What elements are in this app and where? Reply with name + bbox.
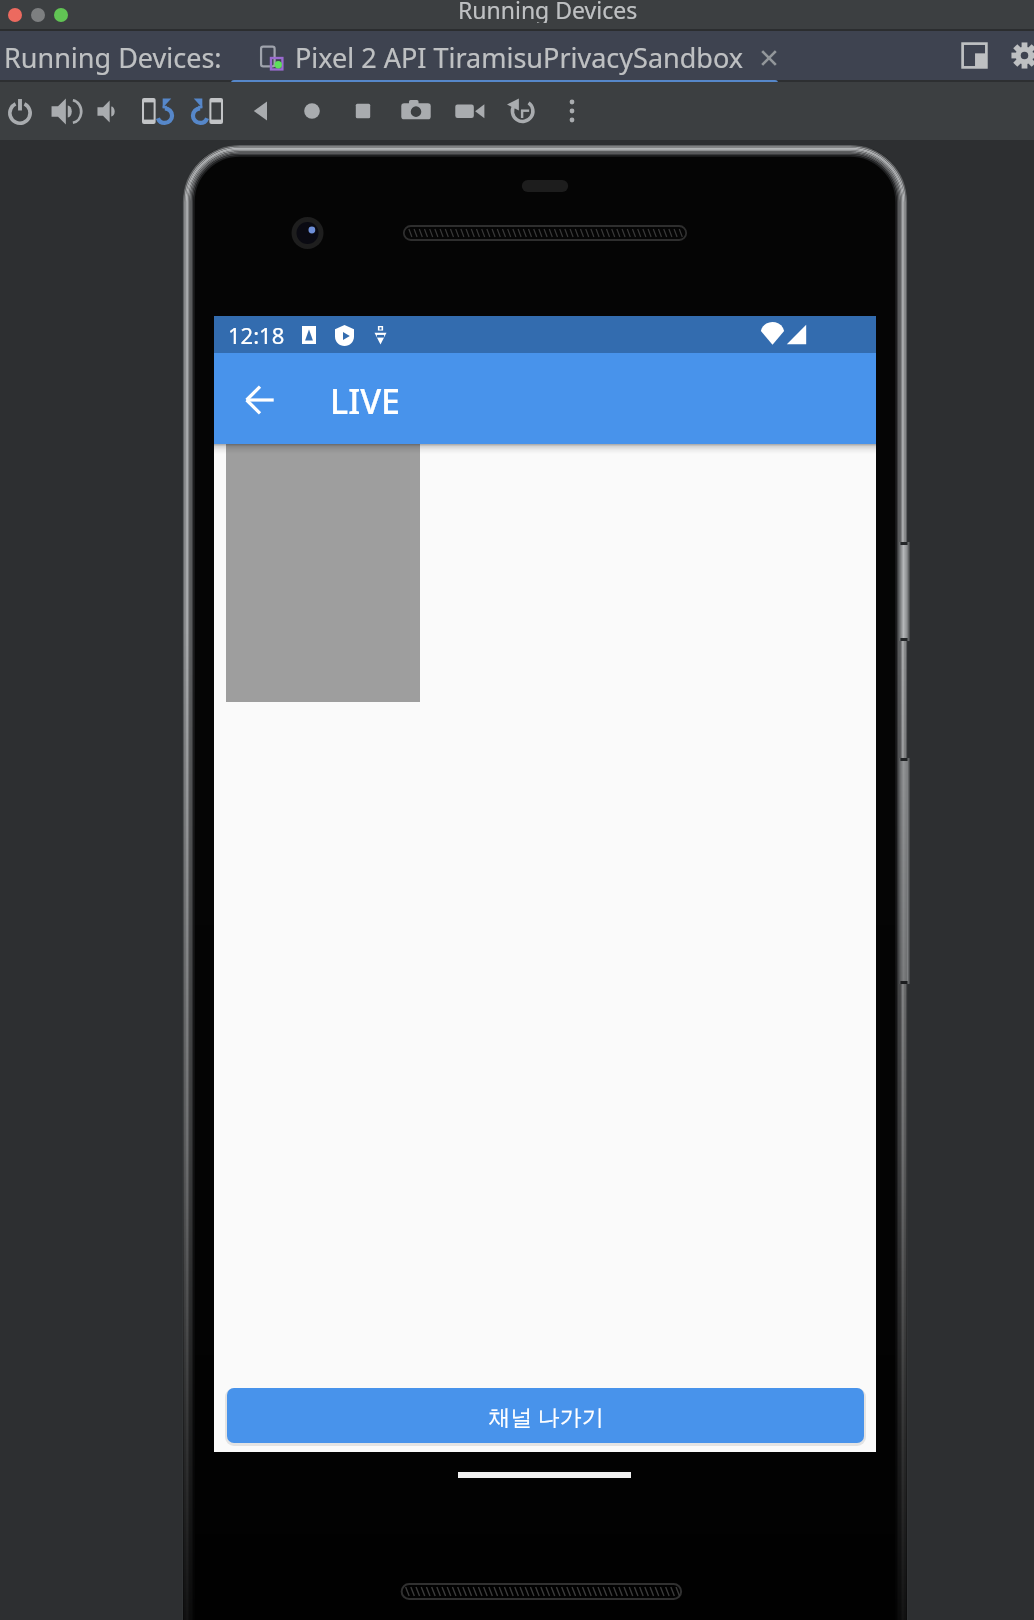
button[interactable]: Overview [341,82,385,140]
staticText: 채널 나가기 [488,1401,604,1431]
button[interactable]: Home [290,82,334,140]
button[interactable]: 채널 나가기 [227,1388,864,1443]
staticText: 12:18 [228,320,285,350]
other: Close tab [759,48,779,68]
button[interactable]: Volume up [42,82,86,140]
button[interactable]: Power [0,82,42,140]
button[interactable]: Rotate left [134,82,178,140]
staticText: Running Devices [458,0,638,23]
button[interactable]: Back [239,82,283,140]
staticText: Pixel 2 API TiramisuPrivacySandbox [295,39,744,76]
button[interactable]: Volume down [86,82,130,140]
button[interactable]: Settings [1010,41,1034,70]
button[interactable]: Rotate right [186,82,230,140]
button[interactable]: Record screen [448,82,492,140]
staticText: Running Devices: [4,39,222,76]
button[interactable]: More [550,82,594,140]
button[interactable]: Back [231,371,289,429]
button[interactable]: History [498,82,542,140]
staticText: LIVE [330,378,401,424]
button[interactable]: Screenshot [394,82,438,140]
button[interactable]: Layout [961,42,988,69]
